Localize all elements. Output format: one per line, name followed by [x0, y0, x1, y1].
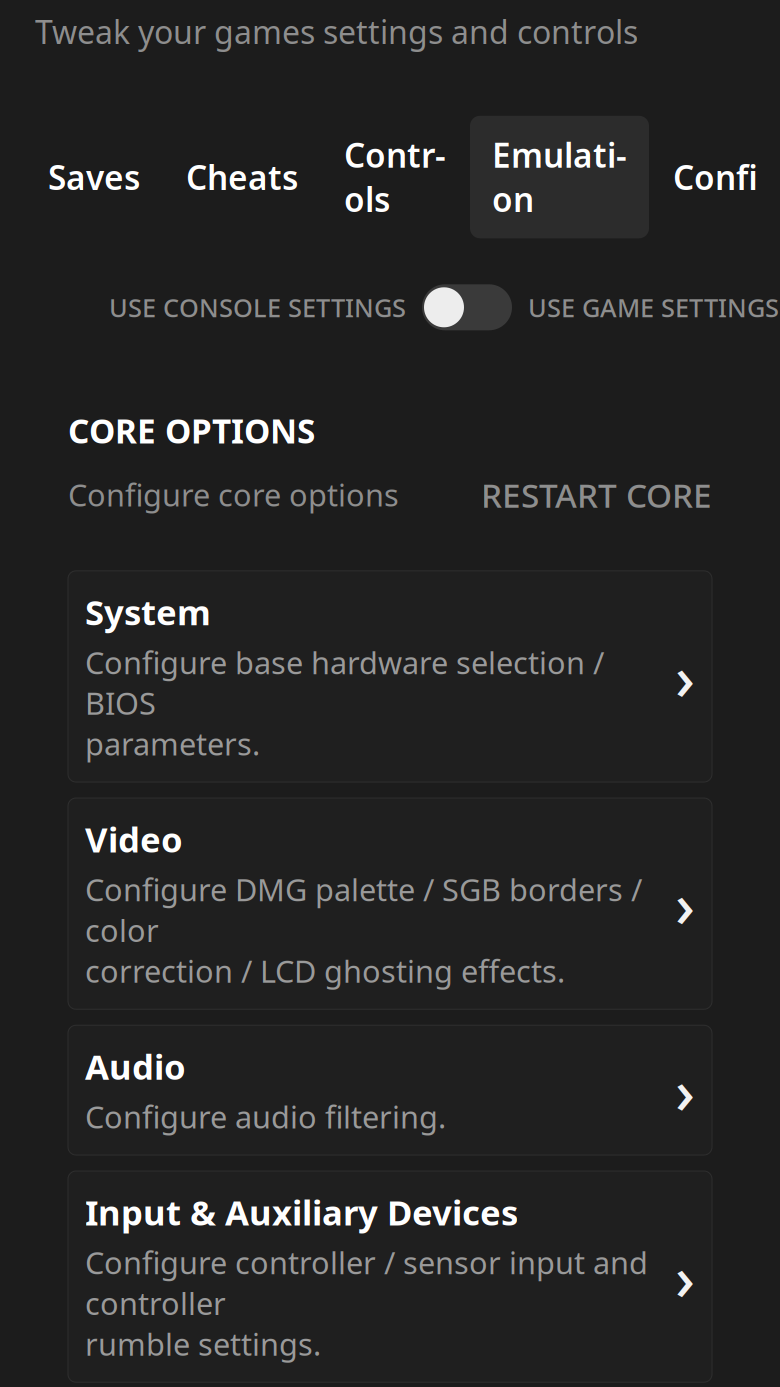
staticText: › [675, 636, 695, 717]
staticText: System [85, 589, 211, 635]
staticText: Cheats [186, 155, 298, 199]
staticText: Emulation [492, 133, 627, 221]
staticText: Configure base hardware selection / BIOS… [85, 642, 604, 764]
button[interactable]: Emulation [470, 116, 649, 238]
button[interactable]: System [68, 571, 712, 782]
staticText: Input & Auxiliary Devices [85, 1189, 518, 1235]
staticText: USE CONSOLE SETTINGS [109, 290, 406, 324]
button[interactable]: Video [68, 798, 712, 1009]
staticText: › [675, 1049, 695, 1131]
staticText: Tweak your games settings and controls [35, 10, 638, 53]
button[interactable]: Controls [322, 116, 468, 238]
button[interactable]: Audio [68, 1025, 712, 1155]
button[interactable]: Saves [26, 138, 162, 216]
staticText: RESTART CORE [481, 473, 712, 517]
button[interactable]: Use game settings toggle [422, 284, 512, 330]
staticText: Configure core options [68, 474, 399, 515]
staticText: CORE OPTIONS [68, 408, 315, 453]
staticText: USE GAME SETTINGS [528, 290, 779, 324]
button[interactable]: Confi [651, 138, 780, 216]
staticText: Confi [673, 155, 758, 199]
staticText: Configure DMG palette / SGB borders / co… [85, 869, 642, 991]
staticText: Saves [48, 155, 140, 199]
button[interactable]: Cheats [164, 138, 320, 216]
staticText: Controls [344, 133, 446, 221]
staticText: Configure audio filtering. [85, 1096, 446, 1137]
staticText: Configure controller / sensor input and … [85, 1242, 648, 1364]
staticText: › [675, 1236, 695, 1317]
staticText: Video [85, 816, 183, 862]
button[interactable]: Input & Auxiliary Devices [68, 1171, 712, 1382]
staticText: Audio [85, 1043, 186, 1089]
button[interactable]: RESTART CORE [481, 473, 712, 517]
staticText: › [675, 863, 695, 944]
